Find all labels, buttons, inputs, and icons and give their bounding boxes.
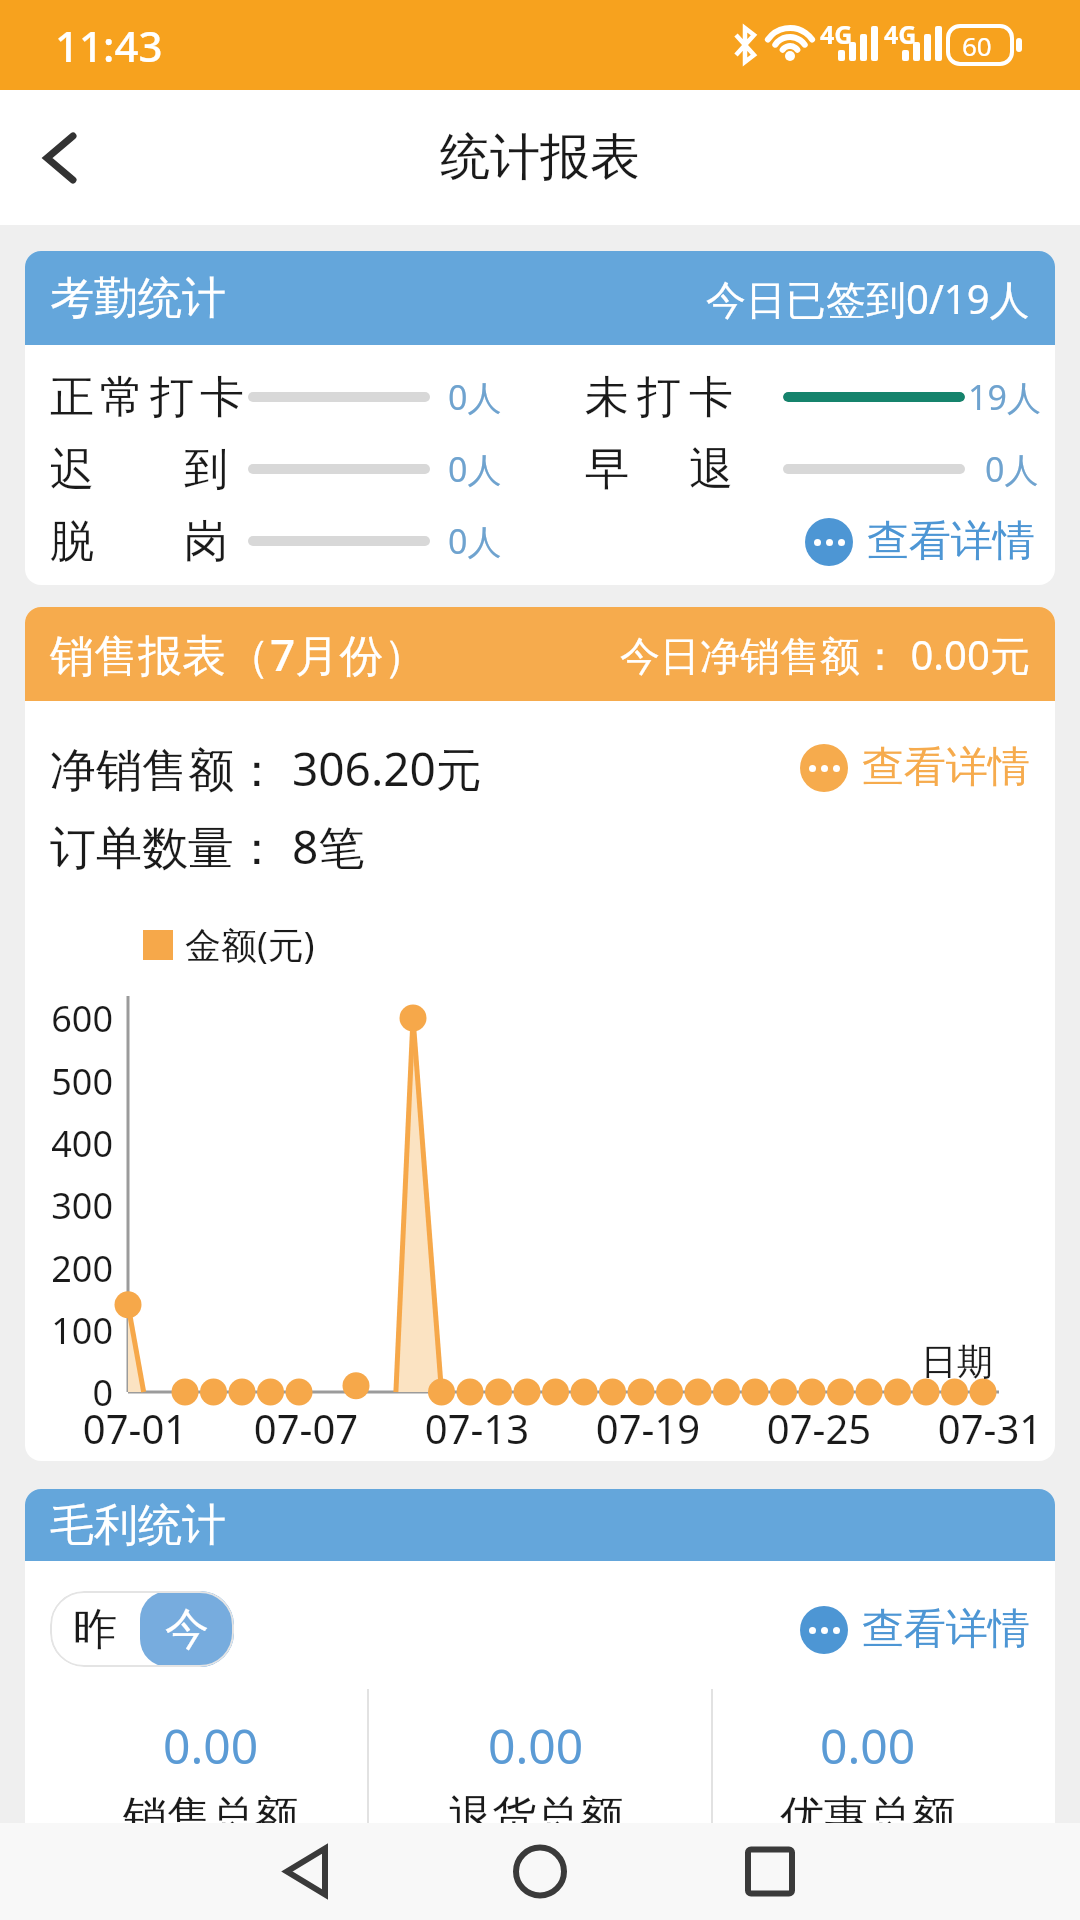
staticText: 07-19: [578, 1401, 718, 1455]
staticText: 岗: [184, 514, 228, 569]
staticText: 查看详情: [867, 515, 1035, 568]
staticText: 金额(元): [185, 920, 315, 969]
staticText: 常: [100, 370, 144, 425]
staticText: 19人: [968, 374, 1041, 420]
staticText: 订单数量： 8笔: [50, 815, 365, 878]
staticText: 查看详情: [862, 741, 1030, 794]
button[interactable]: 查看详情: [800, 1603, 1030, 1656]
staticText: 200: [25, 1244, 113, 1293]
staticText: 今日净销售额： 0.00元: [620, 627, 1030, 682]
staticText: 销售报表（7月份）: [50, 624, 428, 684]
button[interactable]: [0, 1823, 360, 1920]
staticText: 打: [150, 370, 194, 425]
staticText: 销售总额: [123, 1790, 299, 1845]
staticText: 卡: [689, 370, 733, 425]
staticText: 到: [184, 442, 228, 497]
staticText: 4G: [820, 17, 853, 51]
staticText: 600: [25, 994, 113, 1043]
staticText: 脱: [50, 514, 94, 569]
staticText: 今日已签到0/19人: [706, 271, 1030, 326]
staticText: 400: [25, 1119, 113, 1168]
staticText: 0人: [448, 374, 502, 420]
staticText: 退: [689, 442, 733, 497]
button[interactable]: 查看详情: [800, 741, 1030, 794]
staticText: 净销售额： 306.20元: [50, 737, 482, 800]
button[interactable]: [44, 134, 76, 182]
staticText: 60: [962, 28, 992, 63]
button[interactable]: 查看详情: [805, 515, 1035, 568]
staticText: 查看详情: [862, 1603, 1030, 1656]
staticText: 0.00: [820, 1713, 916, 1778]
staticText: 07-31: [920, 1401, 1055, 1455]
staticText: 统计报表: [440, 126, 640, 189]
staticText: 日期: [921, 1339, 993, 1384]
staticText: 未: [585, 370, 629, 425]
staticText: 迟: [50, 442, 94, 497]
staticText: 早: [585, 442, 629, 497]
staticText: 考勤统计: [50, 271, 226, 326]
staticText: 0人: [448, 446, 502, 492]
staticText: 正: [50, 370, 94, 425]
staticText: 昨: [73, 1602, 117, 1657]
staticText: 11:43: [55, 17, 163, 74]
staticText: 优惠总额: [780, 1790, 956, 1845]
button[interactable]: [360, 1823, 720, 1920]
staticText: 500: [25, 1057, 113, 1106]
staticText: 4G: [884, 17, 917, 51]
staticText: 打: [637, 370, 681, 425]
button[interactable]: 今: [140, 1591, 234, 1667]
staticText: 退货总额: [448, 1790, 624, 1845]
staticText: 0.00: [163, 1713, 259, 1778]
staticText: 07-25: [749, 1401, 889, 1455]
staticText: 07-07: [236, 1401, 376, 1455]
button[interactable]: [720, 1823, 1080, 1920]
staticText: 卡: [200, 370, 244, 425]
staticText: 100: [25, 1306, 113, 1355]
staticText: 0人: [985, 446, 1039, 492]
staticText: 0人: [448, 518, 502, 564]
staticText: 今: [165, 1602, 209, 1657]
button[interactable]: 昨: [50, 1591, 140, 1667]
staticText: 07-01: [65, 1401, 205, 1455]
staticText: 07-13: [407, 1401, 547, 1455]
staticText: 0.00: [488, 1713, 584, 1778]
staticText: 0: [25, 1368, 113, 1417]
staticText: 300: [25, 1181, 113, 1230]
staticText: 毛利统计: [50, 1498, 226, 1553]
